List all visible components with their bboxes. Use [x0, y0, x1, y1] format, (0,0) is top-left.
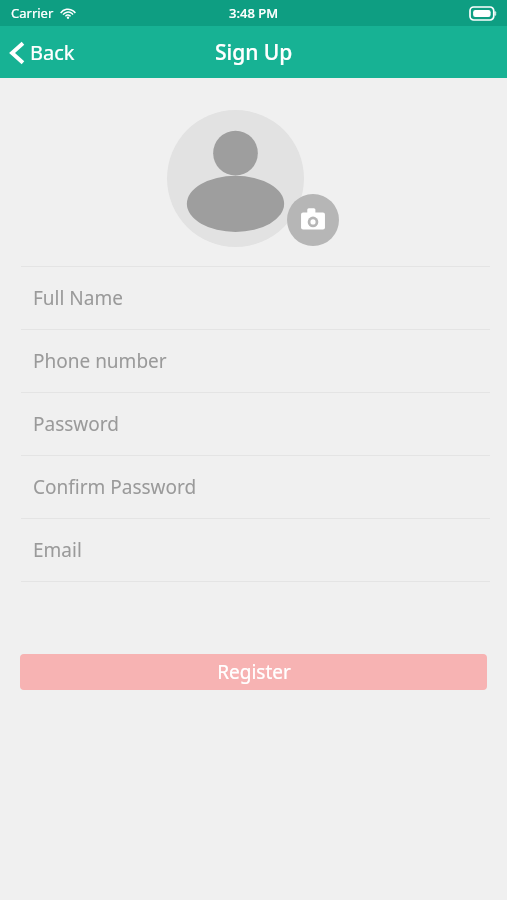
button[interactable]: Back	[0, 33, 87, 72]
staticText: Sign Up	[215, 38, 293, 67]
staticText: Register	[217, 659, 291, 685]
staticText: Confirm Password	[33, 474, 197, 500]
staticText: Full Name	[33, 285, 123, 311]
button[interactable]: Password	[0, 393, 507, 455]
staticText: Password	[33, 411, 119, 437]
staticText: Carrier	[11, 4, 54, 22]
staticText: 3:48 PM	[229, 4, 279, 22]
button[interactable]: Change profile photo	[167, 110, 341, 248]
button[interactable]: Register	[20, 654, 487, 690]
button[interactable]: Email	[0, 519, 507, 581]
button[interactable]: Confirm Password	[0, 456, 507, 518]
button[interactable]: Phone number	[0, 330, 507, 392]
staticText: Email	[33, 537, 82, 563]
button[interactable]: Full Name	[0, 267, 507, 329]
staticText: Phone number	[33, 348, 167, 374]
staticText: Back	[30, 39, 75, 66]
